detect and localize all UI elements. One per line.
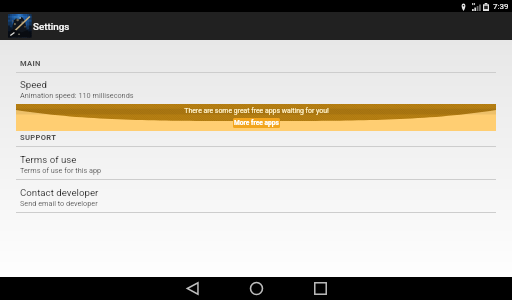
- button[interactable]: Terms of use: [0, 154, 512, 175]
- staticText: Animation speed: 110 milliseconds: [20, 91, 134, 100]
- staticText: Send email to developer: [20, 199, 98, 208]
- button[interactable]: Speed: [0, 79, 512, 100]
- staticText: Contact developer: [20, 187, 99, 198]
- button[interactable]: More free apps: [233, 118, 280, 128]
- staticText: 7:39: [493, 2, 509, 11]
- button[interactable]: Contact developer: [0, 187, 512, 208]
- staticText: SUPPORT: [20, 133, 57, 142]
- staticText: Settings: [33, 21, 70, 32]
- staticText: More free apps: [234, 119, 279, 127]
- staticText: Speed: [20, 79, 47, 90]
- button[interactable]: There are some great free apps waiting f…: [16, 104, 496, 131]
- staticText: There are some great free apps waiting f…: [184, 107, 329, 115]
- staticText: MAIN: [20, 59, 41, 68]
- staticText: Terms of use for this app: [20, 166, 102, 175]
- button[interactable]: Recent apps: [288, 277, 352, 300]
- button[interactable]: Back: [160, 277, 224, 300]
- button[interactable]: Home: [224, 277, 288, 300]
- staticText: Terms of use: [20, 154, 77, 165]
